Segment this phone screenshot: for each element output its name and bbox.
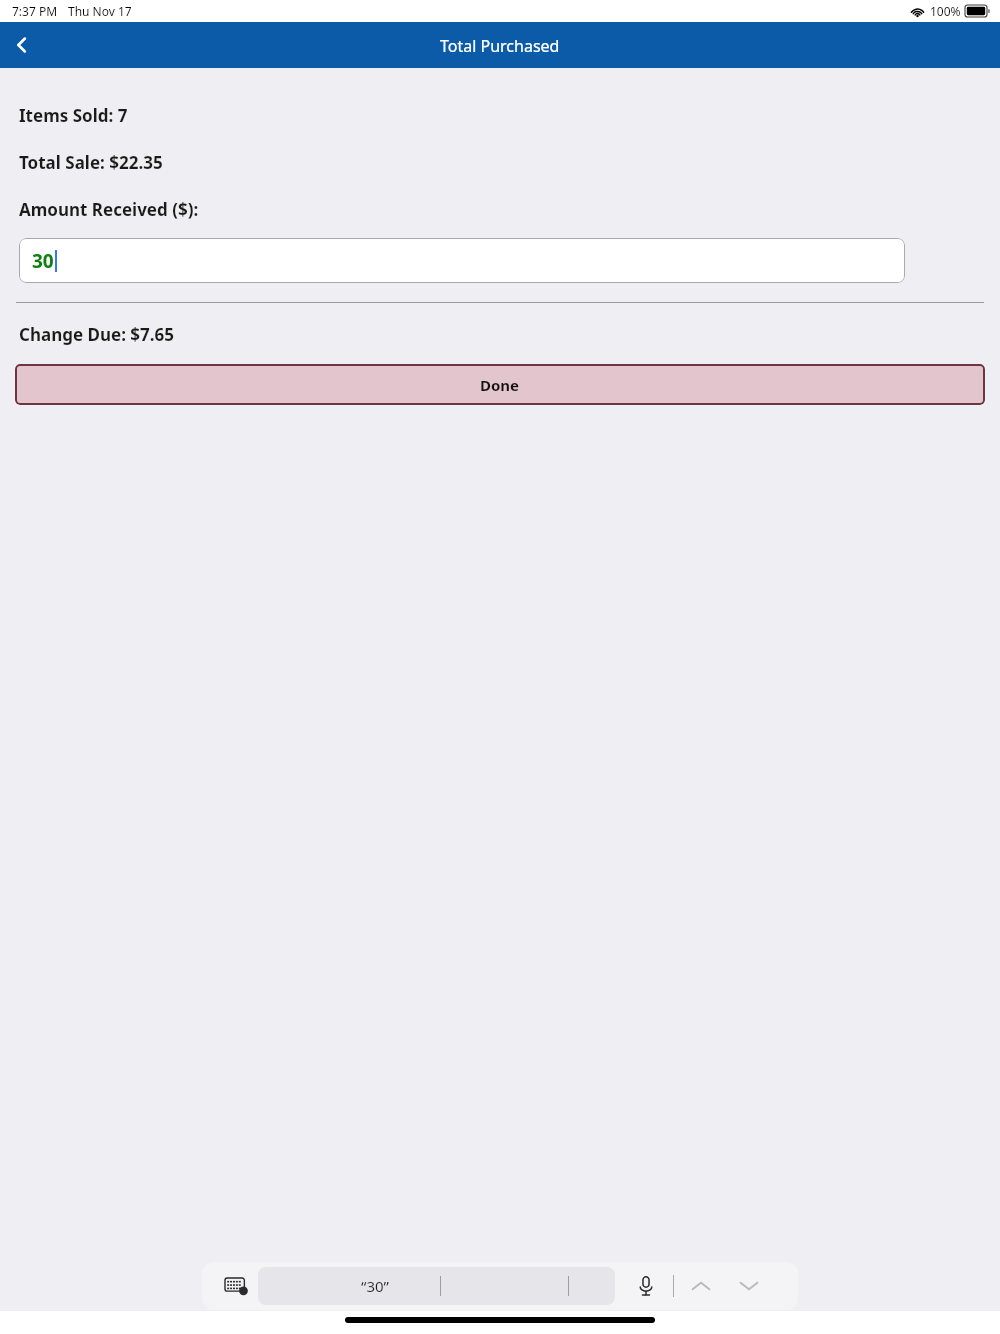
button[interactable]: “30” [258, 1267, 615, 1305]
staticText: Total Purchased [440, 35, 560, 57]
button[interactable]: 30 [19, 238, 905, 283]
staticText: 100% [930, 3, 961, 19]
button[interactable]: Next [734, 1271, 764, 1301]
button[interactable]: Previous [686, 1271, 716, 1301]
staticText: “30” [361, 1276, 389, 1296]
button[interactable]: Done [15, 364, 985, 405]
staticText: Total Sale: $22.35 [19, 151, 163, 174]
button[interactable]: Back [0, 23, 44, 67]
staticText: Change Due: $7.65 [19, 323, 175, 346]
button[interactable]: Dictate [631, 1271, 661, 1301]
staticText: Amount Received ($): [19, 198, 199, 221]
button[interactable]: Keyboard settings [220, 1270, 252, 1302]
staticText: Thu Nov 17 [68, 3, 132, 19]
staticText: 7:37 PM [12, 3, 58, 19]
staticText: 30 [32, 248, 54, 274]
staticText: Items Sold: 7 [19, 104, 128, 127]
staticText: Done [480, 375, 520, 395]
